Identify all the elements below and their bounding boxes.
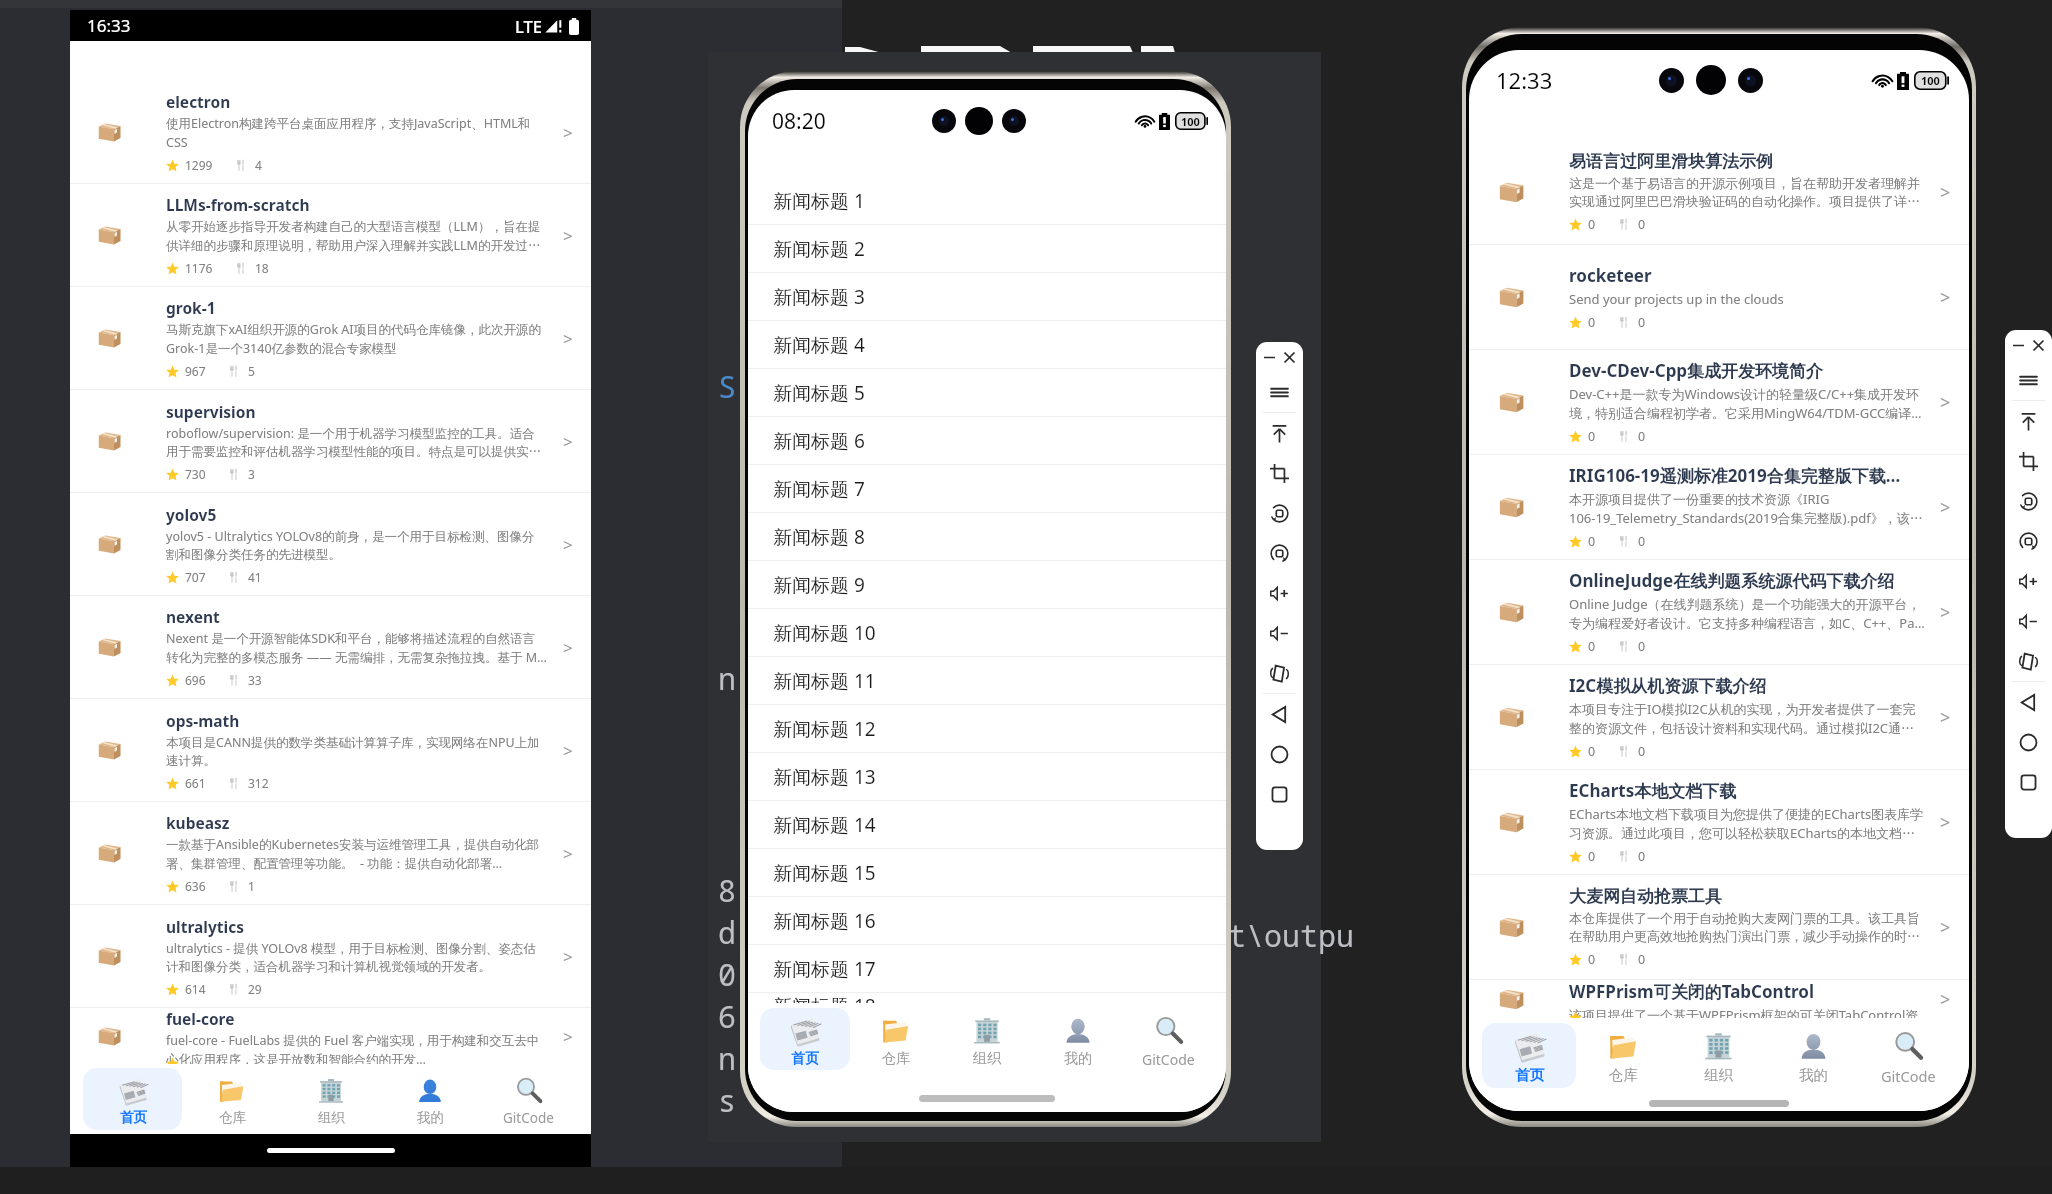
button[interactable]: Volume up bbox=[2005, 561, 2052, 601]
button[interactable]: 我的 bbox=[1766, 1023, 1861, 1096]
button[interactable]: 新闻标题 15 bbox=[748, 849, 1226, 897]
button[interactable]: 新闻标题 6 bbox=[748, 417, 1226, 465]
button[interactable]: Back bbox=[1256, 694, 1303, 734]
button[interactable]: IRIG106-19遥测标准2019合集完整版下载… bbox=[1469, 455, 1969, 560]
button[interactable]: yolov5 bbox=[70, 493, 591, 596]
staticText: 新闻标题 9 bbox=[773, 572, 865, 598]
button[interactable]: 我的 bbox=[380, 1068, 479, 1134]
staticText: 新闻标题 16 bbox=[773, 908, 876, 934]
button[interactable]: Minimize bbox=[1262, 350, 1277, 365]
staticText: > bbox=[563, 533, 573, 556]
button[interactable]: grok-1 bbox=[70, 287, 591, 390]
staticText: 0 bbox=[718, 954, 736, 995]
staticText: 易语言过阿里滑块算法示例 bbox=[1569, 151, 1773, 172]
button[interactable]: 新闻标题 7 bbox=[748, 465, 1226, 513]
button[interactable]: 首页 bbox=[83, 1068, 182, 1134]
button[interactable]: ECharts本地文档下载 bbox=[1469, 770, 1969, 875]
button[interactable]: Expand notifications bbox=[1256, 413, 1303, 453]
button[interactable]: 组织 bbox=[941, 1008, 1032, 1081]
button[interactable]: Rotate right bbox=[1256, 533, 1303, 573]
button[interactable]: 新闻标题 18 bbox=[748, 993, 1226, 1003]
button[interactable]: 大麦网自动抢票工具 bbox=[1469, 875, 1969, 980]
button[interactable]: ultralytics bbox=[70, 905, 591, 1008]
staticText: > bbox=[1940, 810, 1951, 835]
button[interactable]: LLMs-from-scratch bbox=[70, 184, 591, 287]
button[interactable]: supervision bbox=[70, 390, 591, 493]
button[interactable]: electron bbox=[70, 81, 591, 184]
button[interactable]: WPFPrism可关闭的TabControl bbox=[1469, 980, 1969, 1018]
button[interactable]: 易语言过阿里滑块算法示例 bbox=[1469, 140, 1969, 245]
button[interactable]: Dev-CDev-Cpp集成开发环境简介 bbox=[1469, 350, 1969, 455]
button[interactable]: GitCode bbox=[479, 1068, 578, 1134]
staticText: 0 bbox=[1588, 533, 1596, 550]
button[interactable]: 仓库 bbox=[182, 1068, 281, 1134]
button[interactable]: I2C模拟从机资源下载介绍 bbox=[1469, 665, 1969, 770]
button[interactable]: 首页 bbox=[760, 1008, 850, 1081]
button[interactable]: Home bbox=[2005, 722, 2052, 762]
staticText: Nexent 是一个开源智能体SDK和平台，能够将描述流程的自然语言转化为完整的… bbox=[166, 630, 547, 666]
button[interactable]: Flip bbox=[2005, 641, 2052, 681]
button[interactable]: nexent bbox=[70, 596, 591, 699]
button[interactable]: GitCode bbox=[1123, 1008, 1214, 1081]
button[interactable]: Recents bbox=[1256, 774, 1303, 814]
staticText: Dev-CDev-Cpp集成开发环境简介 bbox=[1569, 359, 1824, 382]
button[interactable]: Close bbox=[2031, 338, 2046, 353]
button[interactable]: Menu bbox=[1256, 372, 1303, 412]
staticText: 从零开始逐步指导开发者构建自己的大型语言模型（LLM），旨在提供详细的步骤和原理… bbox=[166, 218, 547, 254]
button[interactable]: 新闻标题 5 bbox=[748, 369, 1226, 417]
button[interactable]: Volume down bbox=[1256, 613, 1303, 653]
button[interactable]: 新闻标题 13 bbox=[748, 753, 1226, 801]
staticText: 首页 bbox=[791, 1050, 819, 1068]
button[interactable]: Expand notifications bbox=[2005, 401, 2052, 441]
staticText: > bbox=[563, 945, 573, 968]
button[interactable]: 新闻标题 4 bbox=[748, 321, 1226, 369]
button[interactable]: 新闻标题 11 bbox=[748, 657, 1226, 705]
staticText: LTE bbox=[515, 15, 542, 37]
staticText: 大麦网自动抢票工具 bbox=[1569, 886, 1722, 907]
button[interactable]: 新闻标题 1 bbox=[748, 177, 1226, 225]
button[interactable]: Flip bbox=[1256, 653, 1303, 693]
staticText: 新闻标题 3 bbox=[773, 284, 865, 310]
button[interactable]: Crop bbox=[2005, 441, 2052, 481]
button[interactable]: 新闻标题 10 bbox=[748, 609, 1226, 657]
staticText: n bbox=[718, 658, 736, 699]
button[interactable]: Crop bbox=[1256, 453, 1303, 493]
button[interactable]: 组织 bbox=[281, 1068, 380, 1134]
button[interactable]: Home bbox=[1256, 734, 1303, 774]
button[interactable]: GitCode bbox=[1861, 1023, 1956, 1096]
button[interactable]: 新闻标题 3 bbox=[748, 273, 1226, 321]
staticText: 636 bbox=[185, 878, 206, 894]
staticText: 仓库 bbox=[219, 1109, 246, 1126]
button[interactable]: ops-math bbox=[70, 699, 591, 802]
staticText: 本仓库提供了一个用于自动抢购大麦网门票的工具。该工具旨在帮助用户更高效地抢购热门… bbox=[1569, 910, 1925, 945]
button[interactable]: Recents bbox=[2005, 762, 2052, 802]
button[interactable]: Back bbox=[2005, 682, 2052, 722]
button[interactable]: 仓库 bbox=[850, 1008, 941, 1081]
staticText: 新闻标题 14 bbox=[773, 812, 876, 838]
button[interactable]: kubeasz bbox=[70, 802, 591, 905]
button[interactable]: 我的 bbox=[1032, 1008, 1123, 1081]
button[interactable]: Menu bbox=[2005, 360, 2052, 400]
button[interactable]: 首页 bbox=[1482, 1023, 1576, 1096]
staticText: yolov5 - Ultralytics YOLOv8的前身，是一个用于目标检测… bbox=[166, 528, 547, 563]
button[interactable]: 新闻标题 17 bbox=[748, 945, 1226, 993]
button[interactable]: Volume up bbox=[1256, 573, 1303, 613]
button[interactable]: 新闻标题 16 bbox=[748, 897, 1226, 945]
button[interactable]: 组织 bbox=[1671, 1023, 1766, 1096]
button[interactable]: 新闻标题 12 bbox=[748, 705, 1226, 753]
button[interactable]: rocketeer bbox=[1469, 245, 1969, 350]
button[interactable]: 新闻标题 2 bbox=[748, 225, 1226, 273]
button[interactable]: Volume down bbox=[2005, 601, 2052, 641]
button[interactable]: Minimize bbox=[2011, 338, 2026, 353]
button[interactable]: 新闻标题 14 bbox=[748, 801, 1226, 849]
button[interactable]: fuel-core bbox=[70, 1008, 591, 1064]
button[interactable]: Close bbox=[1282, 350, 1297, 365]
button[interactable]: 新闻标题 9 bbox=[748, 561, 1226, 609]
button[interactable]: Rotate right bbox=[2005, 521, 2052, 561]
button[interactable]: Rotate left bbox=[2005, 481, 2052, 521]
button[interactable]: 仓库 bbox=[1576, 1023, 1671, 1096]
staticText: 该项目提供了一个基于WPFPrism框架的可关闭TabControl资源… bbox=[1569, 1006, 1925, 1018]
button[interactable]: 新闻标题 8 bbox=[748, 513, 1226, 561]
button[interactable]: Rotate left bbox=[1256, 493, 1303, 533]
button[interactable]: OnlineJudge在线判题系统源代码下载介绍 bbox=[1469, 560, 1969, 665]
